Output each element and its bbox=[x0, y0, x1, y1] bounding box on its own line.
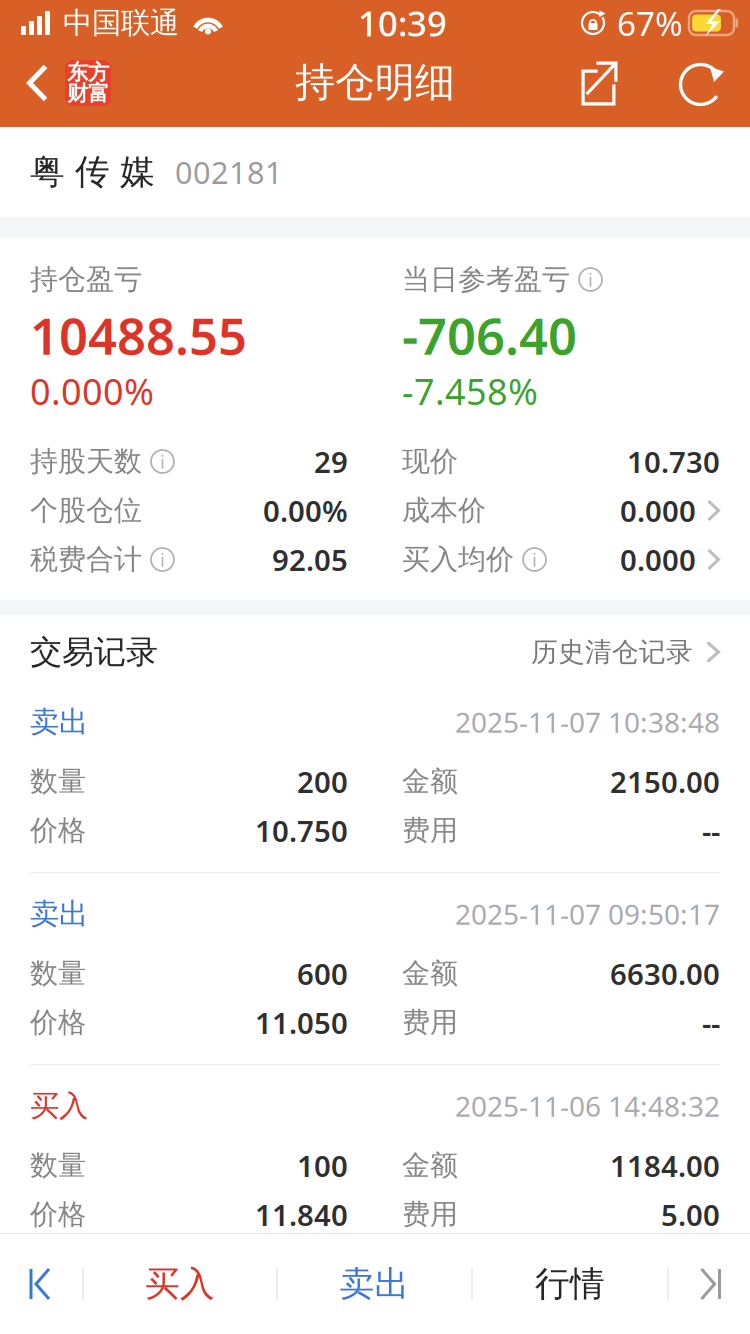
staticText: 5.00 bbox=[661, 1195, 720, 1234]
staticText: 金额 bbox=[402, 1148, 458, 1183]
button[interactable]: 刷新 bbox=[651, 46, 750, 127]
staticText: -- bbox=[702, 811, 720, 850]
staticText: 价格 bbox=[30, 813, 86, 848]
staticText: 行情 bbox=[535, 1263, 605, 1305]
staticText: 11.050 bbox=[255, 1003, 348, 1042]
staticText: 价格 bbox=[30, 1197, 86, 1232]
staticText: 100 bbox=[297, 1146, 348, 1185]
button[interactable]: 分享 bbox=[540, 46, 651, 127]
staticText: -706.40 bbox=[402, 301, 577, 369]
staticText: 持仓盈亏 bbox=[30, 262, 142, 297]
staticText: 费用 bbox=[402, 1005, 458, 1040]
staticText: 0.000 bbox=[620, 491, 696, 530]
staticText: 卖出 bbox=[339, 1263, 409, 1305]
button[interactable]: 下一只 bbox=[668, 1234, 750, 1334]
staticText: 10488.55 bbox=[30, 301, 247, 369]
staticText: 个股仓位 bbox=[30, 493, 142, 528]
staticText: -7.458% bbox=[402, 367, 538, 415]
staticText: 6630.00 bbox=[610, 954, 720, 993]
staticText: 持股天数 bbox=[30, 444, 142, 479]
staticText: 费用 bbox=[402, 1197, 458, 1232]
staticText: 0.00% bbox=[263, 491, 348, 530]
staticText: 卖出 bbox=[30, 704, 88, 740]
staticText: 29 bbox=[314, 442, 348, 481]
staticText: 10:39 bbox=[358, 0, 447, 46]
staticText: 2150.00 bbox=[610, 762, 720, 801]
staticText: 买入 bbox=[145, 1263, 215, 1305]
button[interactable]: 卖出 bbox=[277, 1234, 471, 1334]
staticText: i bbox=[160, 547, 165, 572]
staticText: 0.000% bbox=[30, 367, 154, 415]
staticText: 92.05 bbox=[272, 540, 348, 579]
staticText: 买入均价 bbox=[402, 542, 514, 577]
staticText: 价格 bbox=[30, 1005, 86, 1040]
staticText: i bbox=[160, 449, 165, 474]
staticText: 数量 bbox=[30, 1148, 86, 1183]
staticText: 粤 传 媒 bbox=[30, 151, 155, 193]
staticText: 财富 bbox=[67, 80, 109, 107]
staticText: 2025-11-07 10:38:48 bbox=[455, 703, 720, 741]
staticText: 税费合计 bbox=[30, 542, 142, 577]
button[interactable]: 买入 bbox=[83, 1234, 276, 1334]
staticText: 600 bbox=[297, 954, 348, 993]
staticText: 0.000 bbox=[620, 540, 696, 579]
staticText: 持仓明细 bbox=[295, 58, 455, 107]
staticText: i bbox=[588, 267, 593, 292]
staticText: 成本价 bbox=[402, 493, 486, 528]
staticText: 中国联通 bbox=[63, 5, 179, 41]
staticText: 1184.00 bbox=[610, 1146, 720, 1185]
staticText: 200 bbox=[297, 762, 348, 801]
staticText: 11.840 bbox=[255, 1195, 348, 1234]
staticText: 10.730 bbox=[627, 442, 720, 481]
button[interactable]: 上一只 bbox=[0, 1234, 82, 1334]
staticText: 费用 bbox=[402, 813, 458, 848]
staticText: 金额 bbox=[402, 764, 458, 799]
staticText: 当日参考盈亏 bbox=[402, 262, 570, 297]
staticText: 卖出 bbox=[30, 896, 88, 932]
button[interactable]: 行情 bbox=[472, 1234, 667, 1334]
staticText: 2025-11-07 09:50:17 bbox=[455, 895, 720, 933]
staticText: 数量 bbox=[30, 764, 86, 799]
staticText: 历史清仓记录 bbox=[531, 636, 693, 668]
staticText: 现价 bbox=[402, 444, 458, 479]
staticText: 002181 bbox=[175, 152, 283, 192]
staticText: 67% bbox=[617, 1, 683, 45]
staticText: 10.750 bbox=[255, 811, 348, 850]
staticText: 2025-11-06 14:48:32 bbox=[455, 1087, 720, 1125]
staticText: 金额 bbox=[402, 956, 458, 991]
staticText: 交易记录 bbox=[30, 632, 158, 672]
staticText: 买入 bbox=[30, 1088, 88, 1124]
staticText: 东方 bbox=[67, 59, 109, 86]
button[interactable]: 返回 bbox=[0, 46, 121, 127]
staticText: 数量 bbox=[30, 956, 86, 991]
button[interactable]: 历史清仓记录 bbox=[531, 636, 720, 668]
staticText: -- bbox=[702, 1003, 720, 1042]
staticText: i bbox=[532, 547, 537, 572]
